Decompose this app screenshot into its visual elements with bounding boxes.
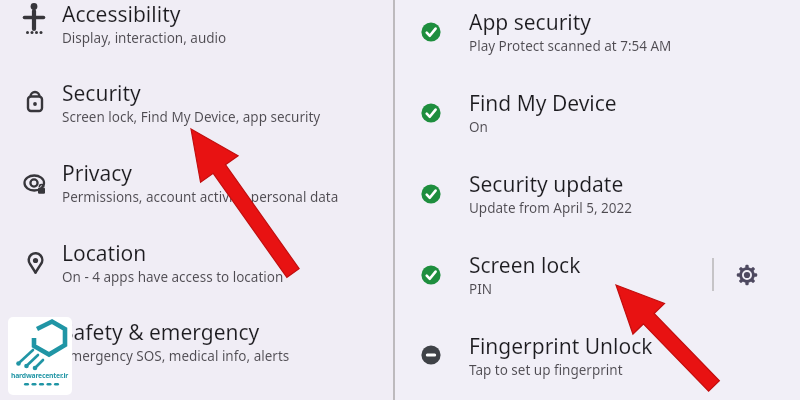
staticText: Location	[62, 239, 147, 268]
staticText: Play Protect scanned at 7:54 AM	[469, 37, 672, 55]
staticText: Permissions, account activity, personal …	[62, 188, 339, 206]
staticText: Screen lock	[469, 251, 581, 280]
button[interactable]: hardwarecenter.ir	[8, 317, 72, 395]
staticText: Security update	[469, 170, 624, 199]
staticText: Privacy	[62, 159, 133, 188]
staticText: Security	[62, 79, 141, 108]
button[interactable]: Privacy	[0, 147, 392, 219]
staticText: Display, interaction, audio	[62, 29, 227, 47]
button[interactable]: Location	[0, 227, 392, 299]
staticText: Accessibility	[62, 0, 181, 29]
staticText: Safety & emergency	[62, 318, 260, 347]
staticText: Fingerprint Unlock	[469, 332, 653, 361]
staticText: Emergency SOS, medical info, alerts	[62, 347, 290, 365]
staticText: On	[469, 118, 488, 136]
staticText: Find My Device	[469, 89, 617, 118]
staticText: Update from April 5, 2022	[469, 199, 633, 217]
staticText: Tap to set up fingerprint	[469, 361, 623, 379]
button[interactable]: App security	[400, 0, 800, 68]
button[interactable]: Security	[0, 67, 392, 139]
button[interactable]	[729, 257, 765, 293]
staticText: PIN	[469, 280, 493, 298]
button[interactable]: Security update	[400, 158, 800, 230]
staticText: Screen lock, Find My Device, app securit…	[62, 108, 321, 126]
button[interactable]: Accessibility	[0, 0, 392, 60]
button[interactable]: Find My Device	[400, 77, 800, 149]
button[interactable]: Safety & emergency	[0, 306, 392, 378]
button[interactable]: Screen lock	[400, 239, 800, 311]
button[interactable]: Fingerprint Unlock	[400, 320, 800, 392]
staticText: On - 4 apps have access to location	[62, 268, 284, 286]
staticText: App security	[469, 8, 592, 37]
staticText: hardwarecenter.ir	[11, 371, 69, 380]
